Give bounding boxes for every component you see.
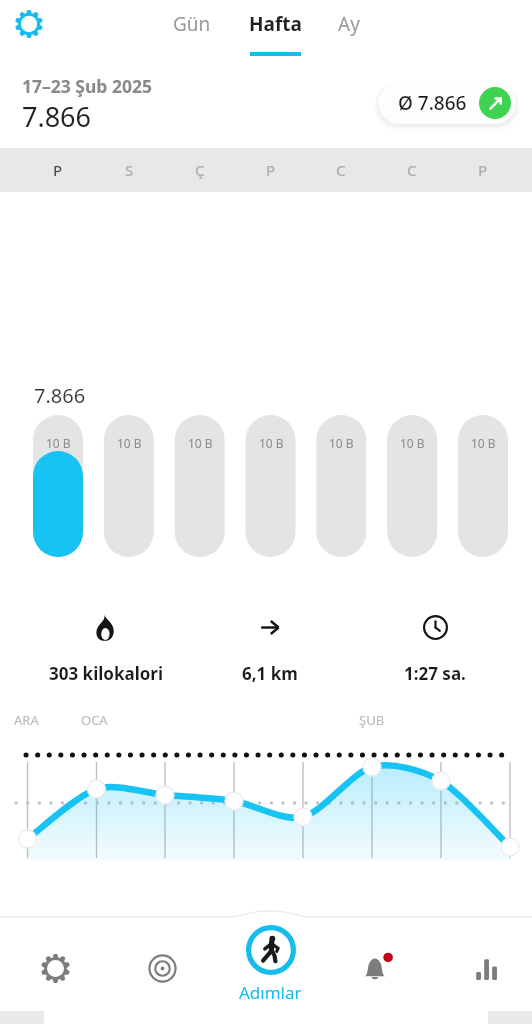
- button[interactable]: Ø 7.866: [378, 82, 516, 124]
- staticText: 1:27 sa.: [404, 662, 466, 685]
- staticText: S: [125, 160, 134, 180]
- staticText: 10 B: [471, 435, 496, 451]
- staticText: Hafta: [249, 11, 302, 37]
- button[interactable]: Ay: [336, 11, 362, 56]
- staticText: Adımlar: [239, 981, 302, 1004]
- button[interactable]: 1:27 sa.: [355, 612, 515, 685]
- staticText: 7.866: [34, 382, 86, 409]
- staticText: OCA: [81, 711, 108, 729]
- staticText: 17–23 Şub 2025: [22, 74, 153, 98]
- staticText: 10 B: [46, 435, 71, 451]
- staticText: P: [266, 160, 276, 180]
- staticText: ARA: [14, 711, 39, 729]
- button[interactable]: Statistics: [455, 939, 515, 997]
- staticText: 6,1 km: [242, 662, 298, 685]
- staticText: Ç: [195, 160, 205, 180]
- staticText: 10 B: [400, 435, 425, 451]
- staticText: P: [478, 160, 488, 180]
- staticText: 10 B: [259, 435, 284, 451]
- staticText: Gün: [173, 11, 211, 37]
- staticText: Ø 7.866: [398, 90, 467, 116]
- staticText: C: [336, 160, 346, 180]
- button[interactable]: Settings: [25, 939, 85, 997]
- button[interactable]: Adımlar: [225, 925, 315, 1004]
- button[interactable]: 6,1 km: [190, 612, 350, 685]
- staticText: P: [53, 160, 63, 180]
- staticText: 10 B: [329, 435, 354, 451]
- staticText: 10 B: [117, 435, 142, 451]
- button[interactable]: Notifications: [346, 939, 406, 997]
- button[interactable]: Goals: [132, 939, 192, 997]
- staticText: 303 kilokalori: [49, 662, 164, 685]
- staticText: ŞUB: [359, 711, 385, 729]
- staticText: Ay: [338, 11, 360, 37]
- staticText: 10 B: [188, 435, 213, 451]
- button[interactable]: Hafta: [247, 11, 304, 56]
- button[interactable]: Settings: [9, 4, 49, 44]
- staticText: C: [407, 160, 417, 180]
- button[interactable]: Gün: [171, 11, 213, 56]
- staticText: 7.866: [22, 98, 92, 135]
- button[interactable]: 303 kilokalori: [26, 612, 186, 685]
